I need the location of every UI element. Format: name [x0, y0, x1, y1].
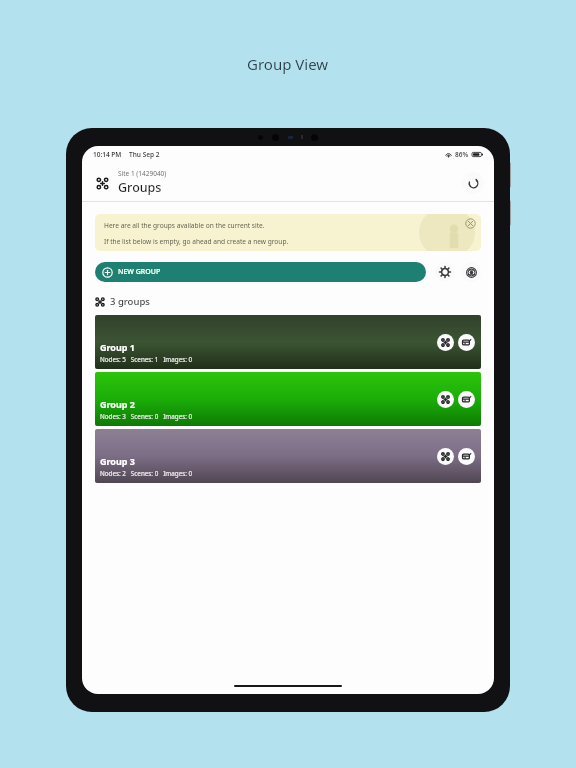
button[interactable]: Nodes: [437, 448, 454, 465]
button[interactable]: Nodes: [437, 334, 454, 351]
button[interactable]: Nodes: [437, 391, 454, 408]
button[interactable]: Group 1: [95, 315, 481, 369]
staticText: Group 3: [100, 455, 136, 467]
staticText: NEW GROUP: [118, 267, 161, 277]
button[interactable]: Scenes: [461, 262, 481, 282]
staticText: Nodes: 5 Scenes: 1 Images: 0: [100, 355, 193, 364]
staticText: Thu Sep 2: [129, 150, 160, 159]
staticText: Group View: [247, 54, 329, 74]
button[interactable]: Scenes: [458, 391, 475, 408]
button[interactable]: Group 2: [95, 372, 481, 426]
staticText: Site 1 (1429040): [118, 169, 167, 178]
button[interactable]: Group 3: [95, 429, 481, 483]
staticText: Here are all the groups available on the…: [104, 221, 265, 230]
staticText: 3 groups: [110, 295, 150, 308]
staticText: 10:14 PM: [93, 150, 122, 159]
staticText: Nodes: 2 Scenes: 0 Images: 0: [100, 469, 193, 478]
staticText: Groups: [118, 179, 162, 196]
button[interactable]: Settings: [435, 262, 455, 282]
staticText: 86%: [455, 150, 469, 159]
staticText: If the list below is empty, go ahead and…: [104, 237, 289, 246]
button[interactable]: Dismiss: [464, 217, 477, 230]
button[interactable]: NEW GROUP: [95, 262, 426, 282]
staticText: Nodes: 3 Scenes: 0 Images: 0: [100, 412, 193, 421]
button[interactable]: Scenes: [458, 334, 475, 351]
staticText: Group 2: [100, 398, 136, 410]
button[interactable]: Refresh: [462, 172, 484, 194]
staticText: Group 1: [100, 341, 136, 353]
button[interactable]: Scenes: [458, 448, 475, 465]
button[interactable]: Groups: [92, 173, 112, 193]
